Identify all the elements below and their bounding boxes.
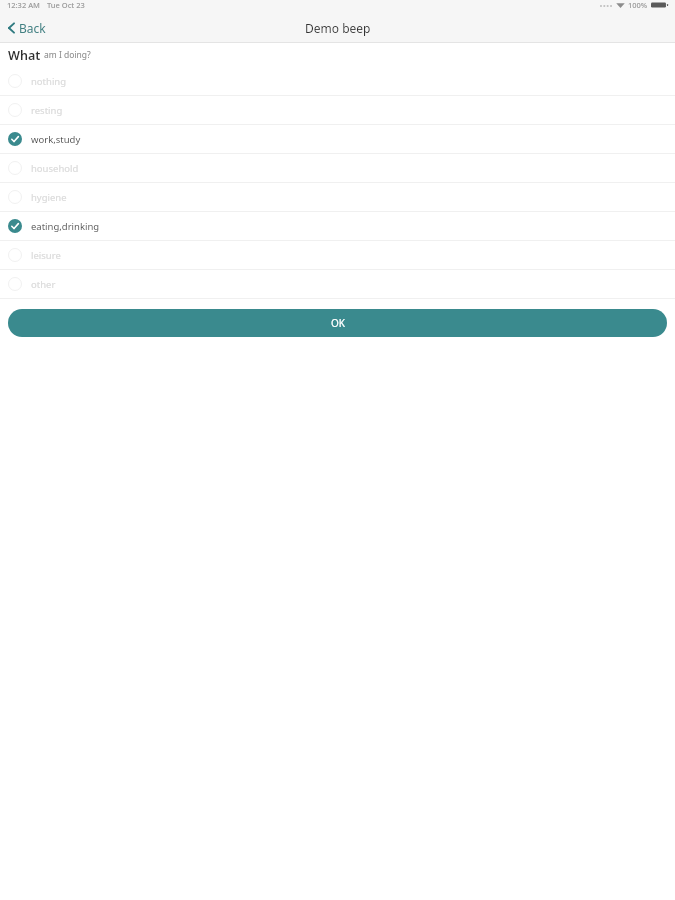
button[interactable]: work,study xyxy=(0,125,675,153)
staticText: 12:32 AM xyxy=(7,0,40,10)
staticText: household xyxy=(31,162,79,175)
staticText: other xyxy=(31,278,56,291)
staticText: eating,drinking xyxy=(31,220,100,233)
staticText: What xyxy=(8,47,41,64)
staticText: 100% xyxy=(628,0,648,10)
staticText: nothing xyxy=(31,75,67,88)
staticText: am I doing? xyxy=(44,49,91,61)
button[interactable]: OK xyxy=(8,309,667,337)
button[interactable]: eating,drinking xyxy=(0,212,675,240)
staticText: OK xyxy=(331,316,345,330)
staticText: leisure xyxy=(31,249,61,262)
staticText: Tue Oct 23 xyxy=(47,0,85,10)
staticText: Demo beep xyxy=(305,20,371,36)
button[interactable]: Back xyxy=(4,17,49,39)
staticText: Back xyxy=(19,20,46,36)
staticText: resting xyxy=(31,104,63,117)
staticText: hygiene xyxy=(31,191,67,204)
staticText: work,study xyxy=(31,133,81,146)
